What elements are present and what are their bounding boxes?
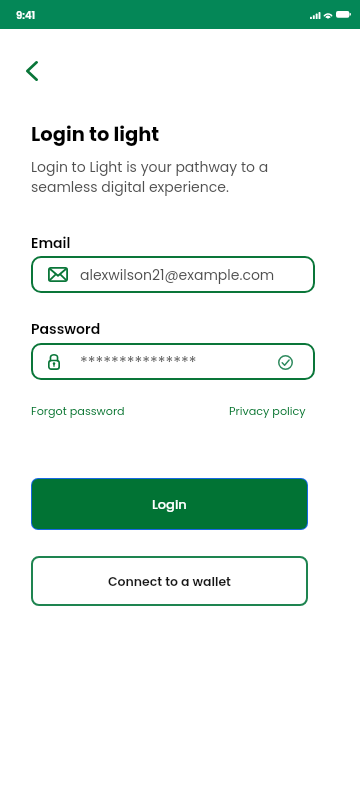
staticText: Password bbox=[31, 319, 101, 339]
button[interactable]: Password valid bbox=[272, 349, 298, 375]
staticText: Login to light bbox=[31, 121, 160, 148]
staticText: Login to Light is your pathway to a seam… bbox=[31, 157, 281, 197]
staticText: Privacy policy bbox=[229, 403, 306, 419]
button[interactable]: *************** bbox=[31, 343, 315, 380]
button[interactable]: Login bbox=[32, 479, 307, 529]
staticText: 9:41 bbox=[16, 8, 36, 22]
staticText: Login bbox=[152, 495, 187, 513]
button[interactable]: Connect to a wallet bbox=[31, 556, 308, 606]
staticText: Forgot password bbox=[31, 403, 125, 419]
staticText: *************** bbox=[80, 351, 277, 373]
staticText: Email bbox=[31, 233, 71, 253]
button[interactable]: alexwilson21@example.com bbox=[31, 256, 315, 293]
button[interactable]: Privacy policy bbox=[229, 403, 306, 419]
staticText: Connect to a wallet bbox=[108, 573, 231, 590]
staticText: alexwilson21@example.com bbox=[80, 265, 275, 285]
button[interactable]: Back bbox=[13, 52, 51, 90]
button[interactable]: Forgot password bbox=[31, 403, 125, 419]
